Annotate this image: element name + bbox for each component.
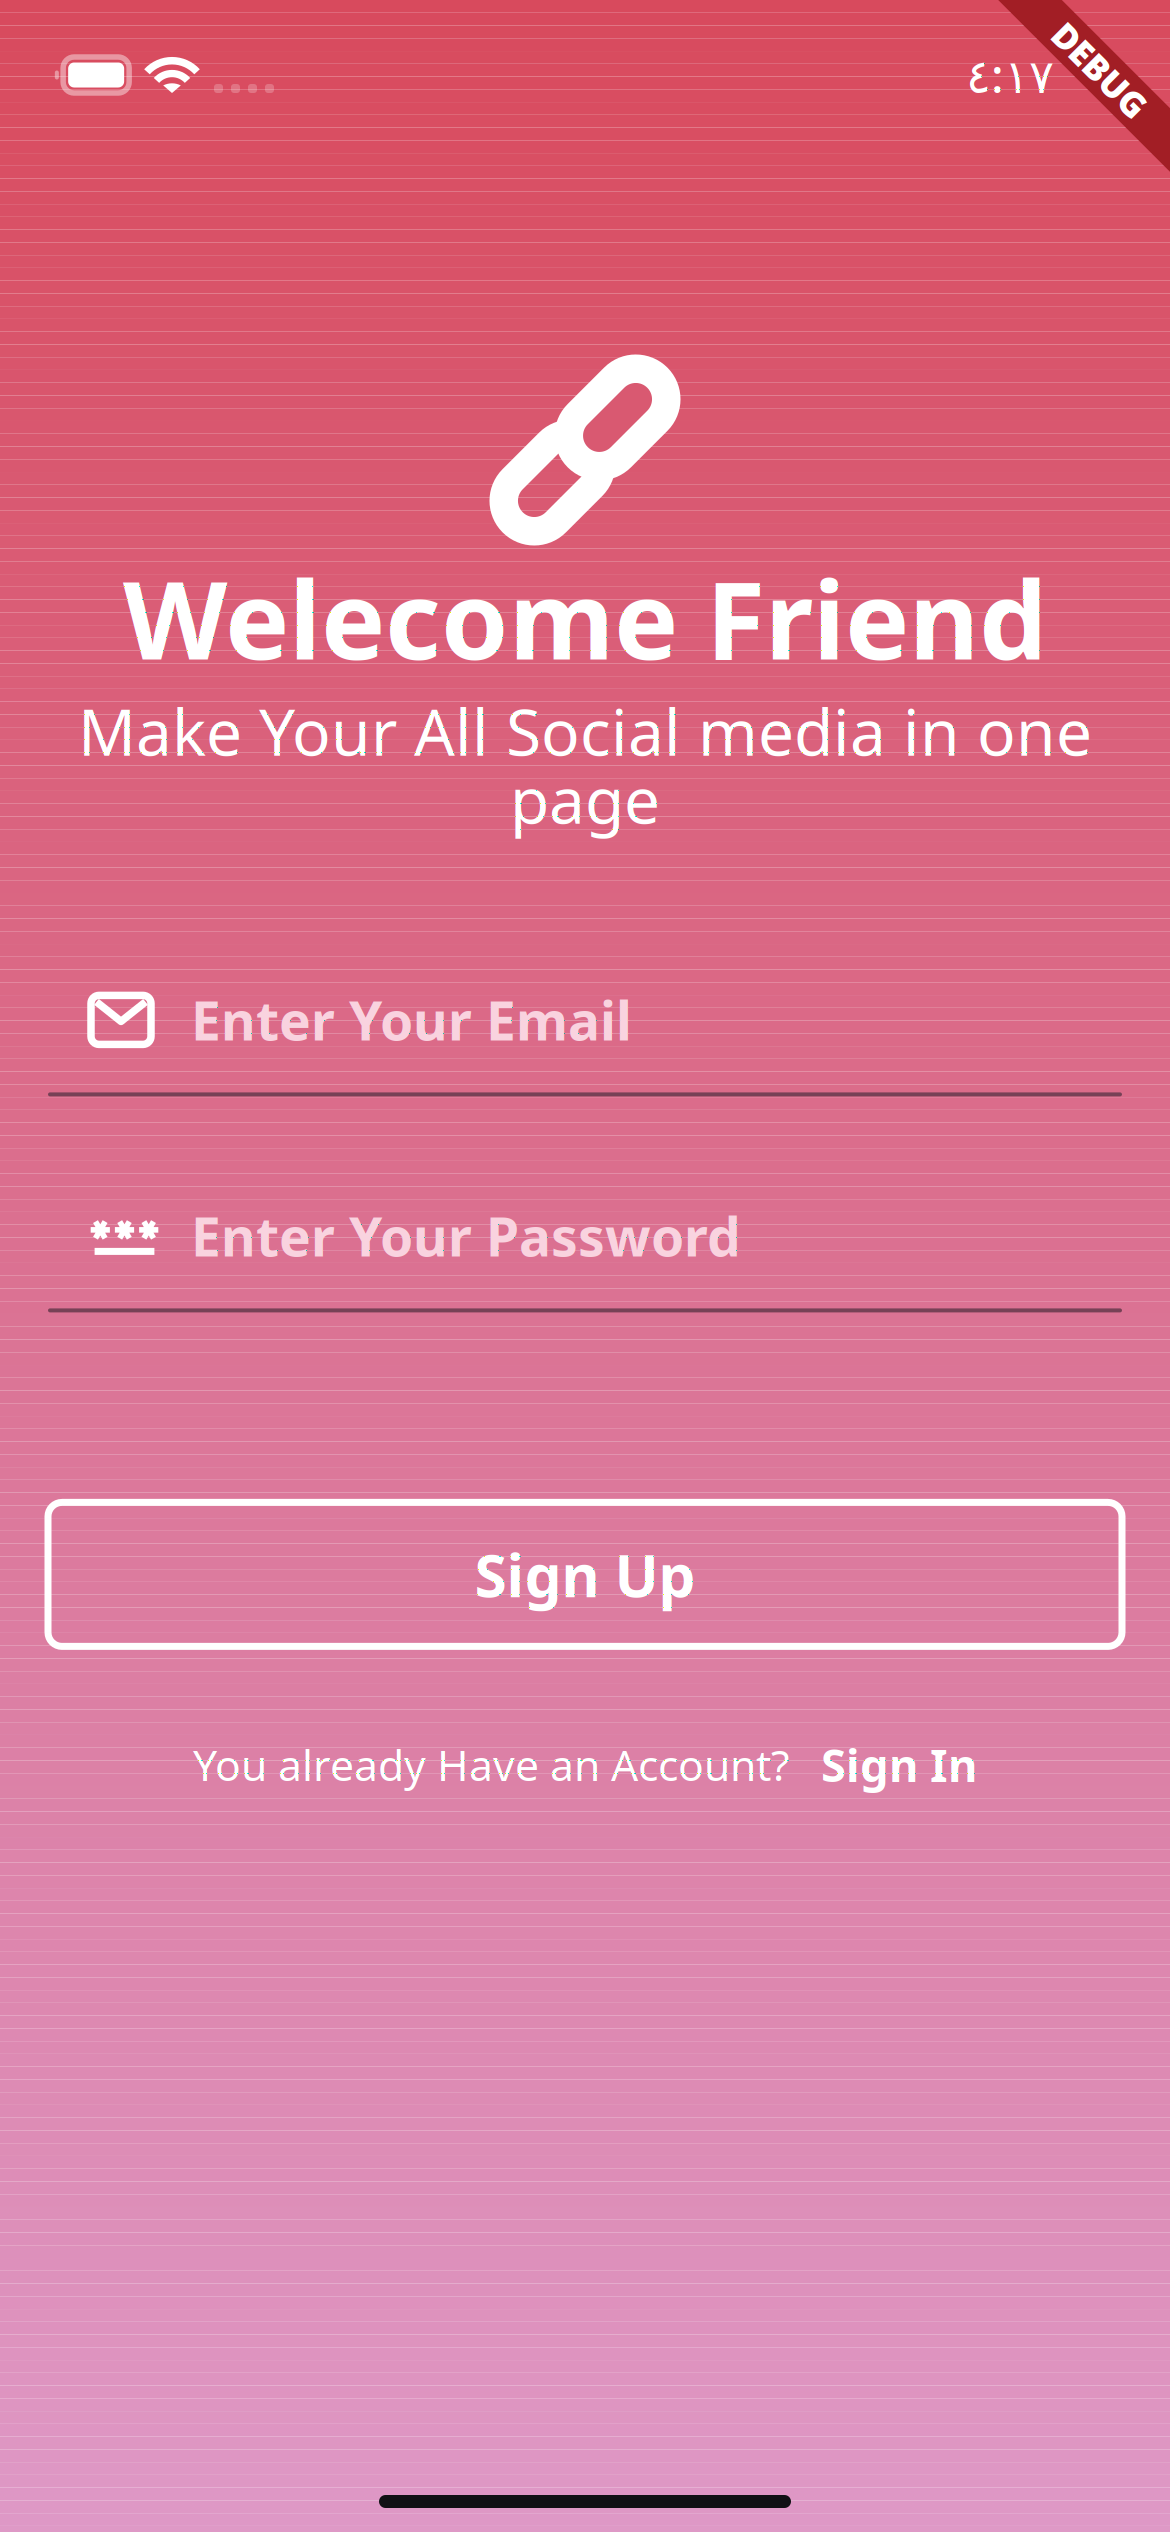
staticText: Sign In <box>821 1734 977 1795</box>
staticText: Sign Up <box>474 1535 695 1613</box>
staticText: page <box>510 756 660 841</box>
staticText: ٤:١٧ <box>966 44 1054 106</box>
staticText: Welecome Friend <box>123 546 1047 689</box>
staticText: Enter Your Password <box>191 1200 741 1271</box>
staticText: Make Your All Social media in one <box>78 688 1092 773</box>
staticText: Enter Your Email <box>191 984 632 1055</box>
button[interactable]: Sign Up <box>48 1502 1122 1646</box>
staticText: You already Have an Account? <box>193 1736 790 1793</box>
button[interactable]: Sign In <box>821 1734 977 1795</box>
staticText: DEBUG <box>1040 47 1159 93</box>
